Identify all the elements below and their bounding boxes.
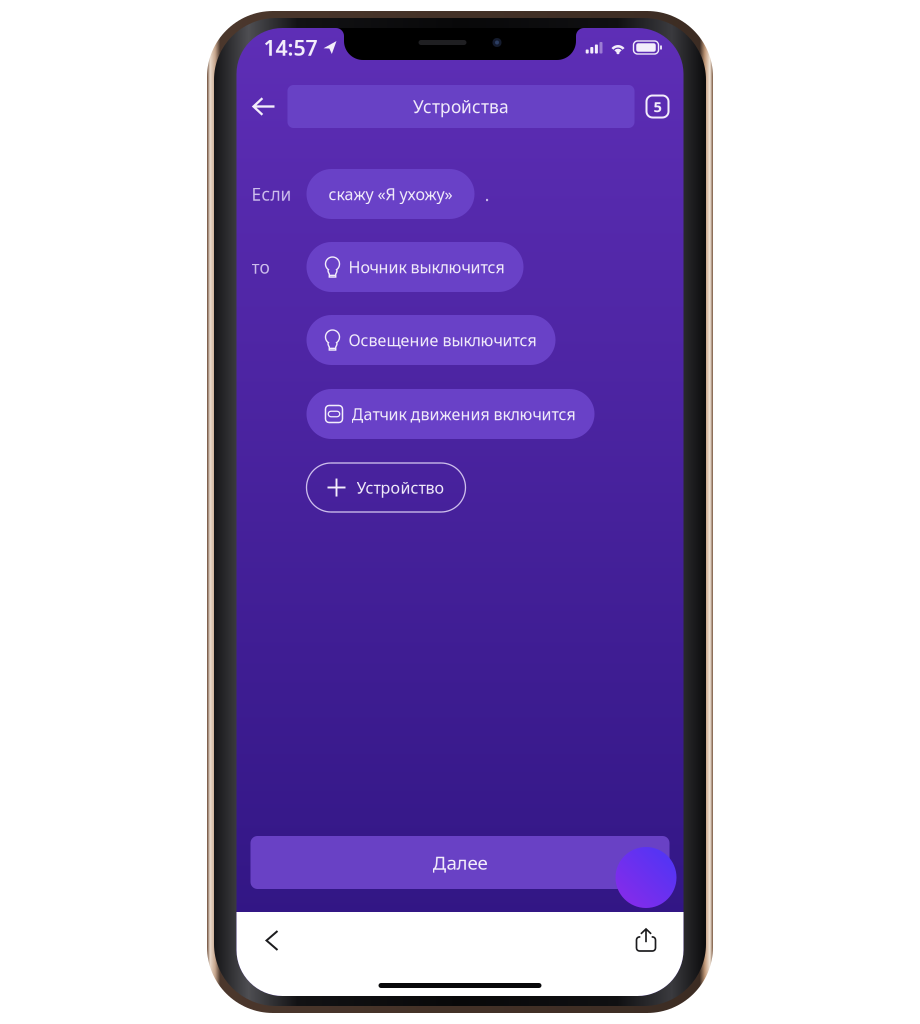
staticText: Ночник выключится: [348, 256, 504, 278]
button[interactable]: Устройство: [306, 463, 465, 512]
button[interactable]: Освещение выключится: [306, 315, 555, 365]
button[interactable]: Ночник выключится: [306, 242, 523, 292]
staticText: .: [484, 182, 489, 206]
staticText: Если: [251, 182, 291, 205]
button[interactable]: Share: [622, 912, 669, 963]
button[interactable]: Далее: [250, 836, 669, 889]
button[interactable]: Устройства: [287, 85, 634, 128]
button[interactable]: Back: [239, 86, 287, 126]
staticText: Далее: [432, 850, 487, 875]
button[interactable]: Back: [250, 912, 293, 963]
staticText: то: [251, 255, 269, 278]
button[interactable]: Tabs: [634, 84, 680, 128]
staticText: скажу «Я ухожу»: [328, 183, 452, 205]
staticText: Освещение выключится: [348, 329, 536, 351]
staticText: 14:57: [263, 33, 317, 62]
staticText: Устройства: [413, 95, 509, 118]
staticText: 5: [653, 97, 661, 116]
button[interactable]: скажу «Я ухожу»: [306, 169, 474, 219]
staticText: Устройство: [356, 477, 444, 498]
staticText: Датчик движения включится: [351, 403, 575, 425]
button[interactable]: Датчик движения включится: [306, 389, 594, 439]
